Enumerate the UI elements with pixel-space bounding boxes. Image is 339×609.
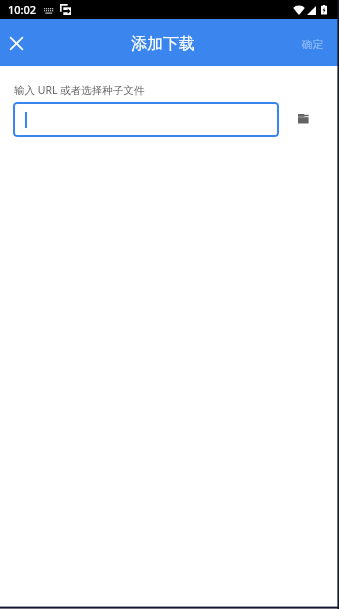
button[interactable]: Close [0,26,33,59]
staticText: 确定 [302,38,323,51]
button[interactable]: 确定 [287,24,339,61]
staticText: 10:02 [8,2,37,17]
staticText: 输入 URL 或者选择种子文件 [14,83,145,97]
staticText: 添加下载 [131,34,195,54]
button[interactable]: Choose torrent file [288,104,318,134]
button[interactable] [13,102,279,137]
